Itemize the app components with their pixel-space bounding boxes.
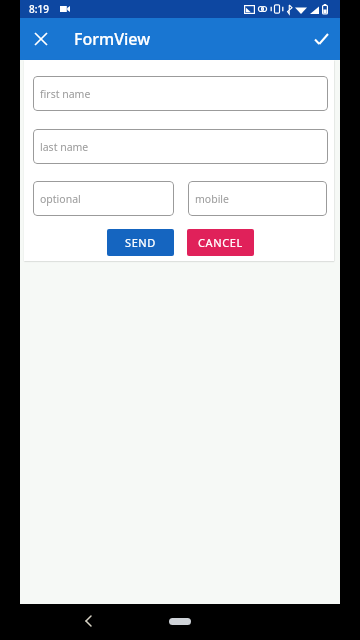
button[interactable]: first name: [33, 76, 328, 111]
button[interactable]: Confirm: [305, 23, 337, 55]
button[interactable]: Close: [25, 23, 57, 55]
button[interactable]: last name: [33, 129, 328, 164]
staticText: optional: [40, 192, 81, 206]
button[interactable]: Home: [169, 618, 191, 625]
button[interactable]: optional: [33, 181, 174, 216]
staticText: CANCEL: [198, 235, 243, 250]
button[interactable]: Back: [75, 608, 101, 634]
staticText: mobile: [195, 192, 229, 206]
staticText: SEND: [125, 235, 156, 250]
staticText: first name: [40, 87, 91, 101]
staticText: last name: [40, 140, 89, 154]
button[interactable]: mobile: [188, 181, 327, 216]
staticText: 8:19: [29, 2, 49, 16]
button[interactable]: SEND: [107, 229, 174, 256]
staticText: FormView: [74, 28, 151, 50]
button[interactable]: CANCEL: [187, 229, 254, 256]
